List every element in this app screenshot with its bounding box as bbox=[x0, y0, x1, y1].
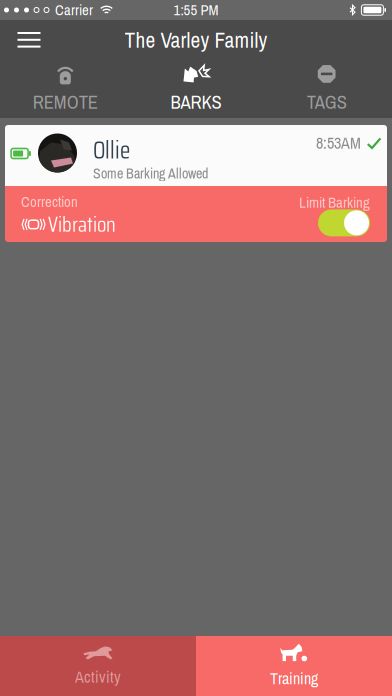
staticText: Carrier bbox=[55, 0, 93, 20]
staticText: Activity bbox=[75, 666, 121, 688]
button[interactable]: Training bbox=[196, 636, 392, 696]
staticText: Limit Barking bbox=[299, 193, 370, 212]
staticText: 1:55 PM bbox=[173, 0, 218, 20]
button[interactable]: REMOTE bbox=[0, 60, 131, 118]
button[interactable]: TAGS bbox=[261, 60, 392, 118]
staticText: REMOTE bbox=[33, 89, 98, 114]
button[interactable]: Activity bbox=[0, 636, 196, 696]
staticText: TAGS bbox=[307, 89, 347, 114]
staticText: 8:53AM bbox=[316, 132, 361, 154]
staticText: Vibration bbox=[48, 208, 116, 241]
staticText: Ollie bbox=[93, 131, 130, 169]
staticText: The Varley Family bbox=[124, 26, 267, 54]
staticText: BARKS bbox=[170, 89, 221, 114]
staticText: Training bbox=[270, 668, 318, 689]
staticText: Correction bbox=[21, 192, 78, 212]
staticText: Some Barking Allowed bbox=[93, 164, 208, 183]
button[interactable]: Menu bbox=[6, 20, 52, 60]
button[interactable]: BARKS bbox=[131, 60, 261, 118]
